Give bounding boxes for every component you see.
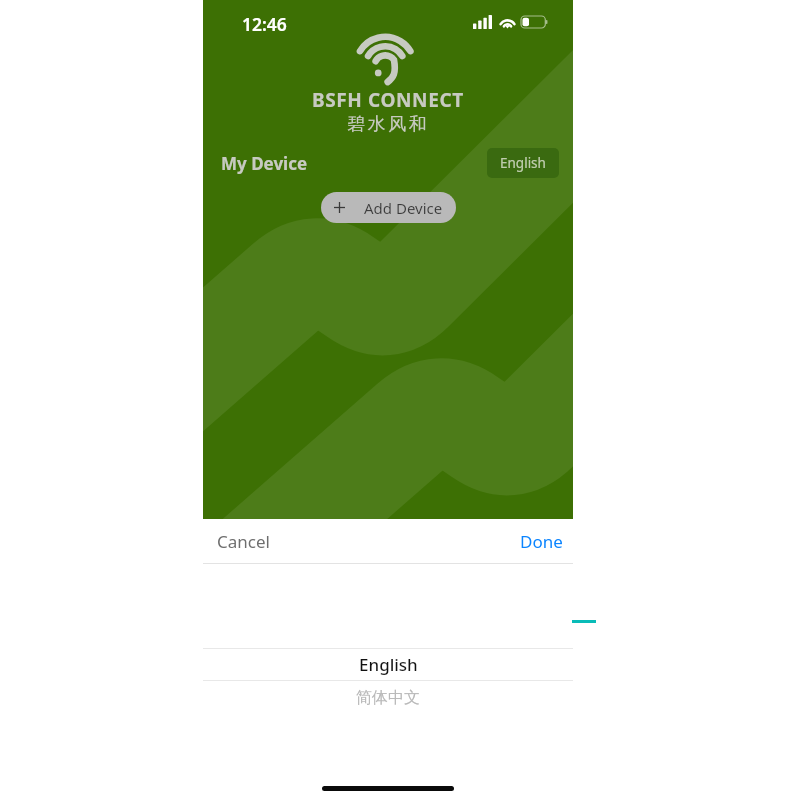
staticText: English — [500, 154, 546, 172]
staticText: 碧水风和 — [347, 113, 430, 136]
staticText: English — [359, 653, 418, 676]
staticText: Add Device — [364, 198, 443, 218]
staticText: My Device — [221, 152, 308, 175]
button[interactable]: 简体中文 — [203, 681, 573, 715]
staticText: Cancel — [217, 530, 270, 553]
button[interactable]: English — [487, 148, 559, 178]
staticText: BSFH CONNECT — [312, 87, 464, 113]
button[interactable]: English — [203, 649, 573, 680]
staticText: 简体中文 — [356, 688, 420, 708]
button[interactable]: Done — [516, 524, 563, 559]
staticText: 12:46 — [242, 12, 287, 36]
staticText: Done — [520, 530, 563, 553]
button[interactable]: Add Device — [321, 192, 456, 223]
button[interactable]: Cancel — [213, 524, 274, 559]
